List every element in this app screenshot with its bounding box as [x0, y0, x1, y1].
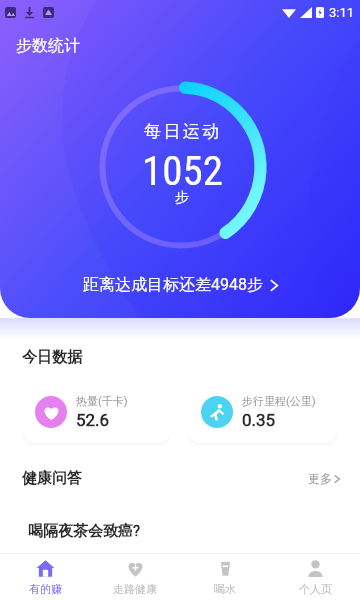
- button[interactable]: 喝水: [180, 554, 270, 600]
- staticText: 个人页: [299, 582, 332, 596]
- button[interactable]: 走路健康: [90, 554, 180, 600]
- staticText: 喝水: [214, 582, 236, 596]
- staticText: 步行里程(公里): [242, 394, 316, 408]
- staticText: 今日数据: [22, 348, 82, 367]
- button[interactable]: 个人页: [270, 554, 360, 600]
- staticText: 距离达成目标还差4948步: [83, 275, 263, 295]
- button[interactable]: 更多: [304, 467, 344, 490]
- staticText: 走路健康: [113, 582, 157, 596]
- staticText: 0.35: [242, 410, 276, 430]
- button[interactable]: 距离达成目标还差4948步: [73, 271, 288, 299]
- button[interactable]: 步行里程(公里): [188, 381, 338, 443]
- staticText: 热量(千卡): [76, 394, 128, 408]
- staticText: 有的赚: [29, 582, 62, 596]
- staticText: 更多: [308, 471, 332, 486]
- staticText: 3:11: [329, 5, 355, 20]
- staticText: 步: [175, 189, 189, 207]
- button[interactable]: 有的赚: [0, 554, 90, 600]
- staticText: 每日运动: [144, 121, 222, 142]
- staticText: 1052: [142, 147, 223, 195]
- staticText: 喝隔夜茶会致癌?: [28, 522, 141, 541]
- button[interactable]: 喝隔夜茶会致癌?: [14, 504, 346, 559]
- button[interactable]: 热量(千卡): [22, 381, 171, 443]
- staticText: 健康问答: [22, 469, 82, 488]
- staticText: 步数统计: [16, 36, 80, 56]
- staticText: 52.6: [76, 410, 110, 430]
